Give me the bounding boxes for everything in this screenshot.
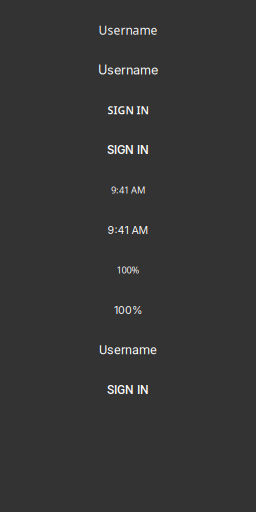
- staticText: SIGN IN: [107, 383, 149, 397]
- staticText: 100%: [114, 303, 142, 316]
- staticText: Username: [99, 343, 157, 357]
- staticText: SIGN IN: [107, 143, 149, 157]
- staticText: 9:41 AM: [107, 223, 148, 236]
- staticText: 100%: [116, 264, 139, 276]
- staticText: Username: [98, 22, 157, 38]
- staticText: Username: [98, 62, 158, 78]
- staticText: SIGN IN: [107, 103, 148, 117]
- staticText: 9:41 AM: [111, 184, 145, 196]
